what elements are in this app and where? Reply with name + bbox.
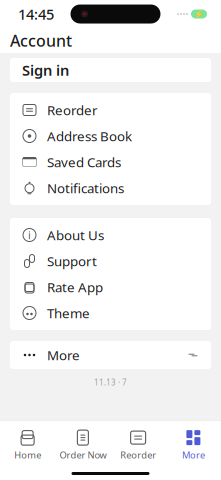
button[interactable]: Order Now — [55, 425, 110, 466]
button[interactable]: i — [10, 222, 211, 248]
button[interactable]: More — [10, 341, 211, 369]
staticText: Reorder — [120, 449, 156, 461]
staticText: Saved Cards — [47, 153, 121, 171]
staticText: i — [28, 228, 31, 242]
staticText: About Us — [47, 226, 104, 244]
staticText: Rate App — [47, 278, 103, 296]
staticText: Notifications — [47, 179, 124, 197]
button[interactable]: More — [166, 425, 221, 466]
staticText: Sign in — [22, 60, 69, 80]
staticText: ⚡ — [194, 9, 204, 18]
button[interactable]: Saved Cards — [10, 149, 211, 175]
staticText: Reorder — [47, 101, 98, 119]
staticText: More — [47, 346, 80, 364]
staticText: Home — [14, 449, 41, 461]
staticText: Address Book — [47, 127, 132, 145]
staticText: Support — [47, 252, 97, 270]
button[interactable]: Reorder — [10, 97, 211, 123]
button[interactable]: Rate App — [10, 274, 211, 300]
button[interactable]: Address Book — [10, 123, 211, 149]
button[interactable]: Theme — [10, 300, 211, 326]
staticText: More — [182, 449, 205, 461]
staticText: Account — [10, 30, 72, 51]
staticText: Theme — [47, 304, 90, 322]
button[interactable]: Notifications — [10, 175, 211, 201]
button[interactable]: Home — [0, 425, 55, 466]
button[interactable]: Support — [10, 248, 211, 274]
staticText: 14:45 — [18, 4, 54, 24]
button[interactable]: Reorder — [110, 425, 166, 466]
staticText: Order Now — [59, 449, 106, 461]
staticText: 11.13 · 7 — [94, 377, 127, 388]
button[interactable]: Sign in — [10, 58, 211, 82]
